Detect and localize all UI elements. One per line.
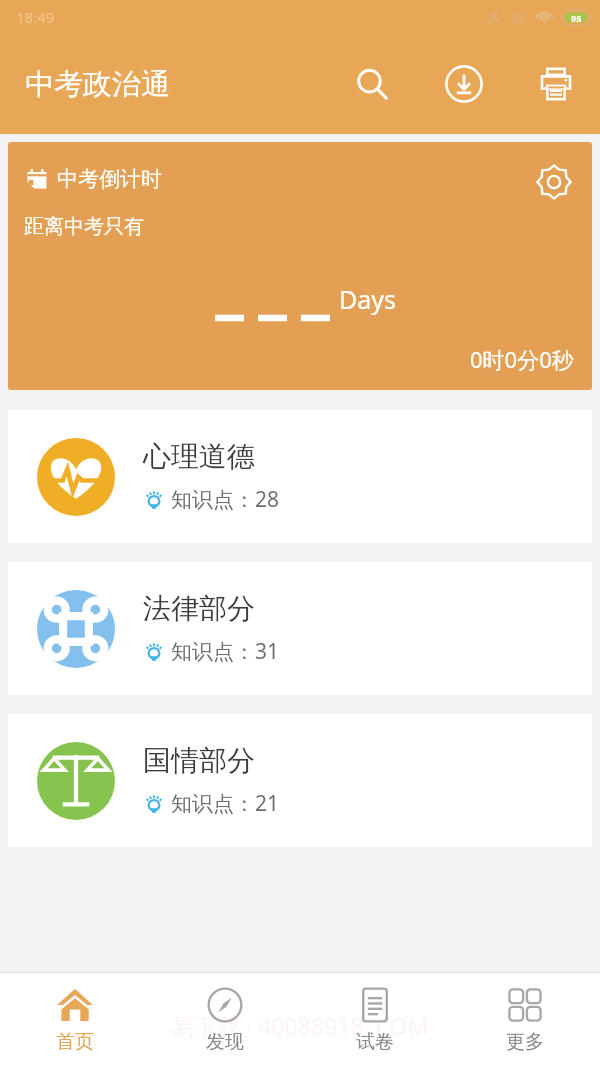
staticText: 知识点：31 (171, 637, 280, 666)
button[interactable]: Search (350, 62, 394, 106)
staticText: 国情部分 (143, 743, 255, 778)
button[interactable]: Print (534, 62, 578, 106)
button[interactable]: 法律部分 (8, 562, 592, 695)
staticText: 知识点：21 (171, 789, 280, 818)
staticText: 18:49 (16, 7, 55, 27)
button[interactable]: 更多 (450, 973, 600, 1067)
staticText: 中考倒计时 (57, 166, 162, 192)
staticText: 发现 (206, 1030, 244, 1054)
staticText: 0时0分0秒 (470, 344, 574, 374)
staticText: 95 (571, 12, 582, 24)
button[interactable]: 试卷 (300, 973, 450, 1067)
staticText: 更多 (506, 1030, 544, 1054)
button[interactable]: 发现 (150, 973, 300, 1067)
staticText: 距离中考只有 (24, 214, 144, 239)
staticText: 首页 (56, 1030, 94, 1054)
staticText: Days (339, 282, 397, 316)
staticText: 知识点：28 (171, 485, 280, 514)
button[interactable]: 国情部分 (8, 714, 592, 847)
button[interactable]: Download (442, 62, 486, 106)
staticText: 心理道德 (143, 439, 255, 474)
button[interactable]: Settings (534, 162, 574, 202)
staticText: 试卷 (356, 1030, 394, 1054)
button[interactable]: 心理道德 (8, 410, 592, 543)
staticText: 法律部分 (143, 591, 255, 626)
staticText: 易下载 · 40088918 .COM (171, 1010, 429, 1041)
button[interactable]: 中考倒计时 (8, 142, 592, 390)
button[interactable]: 首页 (0, 973, 150, 1067)
staticText: 中考政治通 (25, 66, 170, 103)
